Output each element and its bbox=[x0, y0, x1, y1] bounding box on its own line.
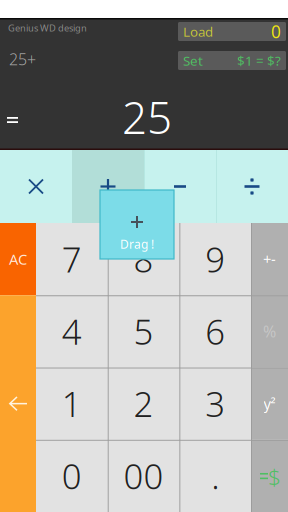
button[interactable]: 1 bbox=[36, 367, 108, 440]
button[interactable]: 2 bbox=[108, 367, 179, 440]
staticText: y² bbox=[263, 394, 275, 413]
staticText: 25 bbox=[122, 88, 172, 146]
staticText: 9 bbox=[205, 236, 225, 282]
staticText: $1 = $? bbox=[237, 52, 281, 69]
button[interactable]: 8 bbox=[108, 223, 179, 295]
button[interactable]: Load bbox=[178, 22, 286, 41]
staticText: 8 bbox=[133, 236, 153, 282]
button[interactable]: 9 bbox=[179, 223, 251, 295]
staticText: 6 bbox=[205, 308, 225, 354]
button[interactable]: Set bbox=[178, 51, 286, 70]
button[interactable]: % bbox=[251, 295, 288, 367]
button[interactable]: y² bbox=[251, 367, 288, 440]
button[interactable]: . bbox=[179, 440, 251, 512]
staticText: 5 bbox=[133, 308, 153, 354]
staticText: Load bbox=[183, 23, 213, 40]
staticText: % bbox=[263, 321, 276, 342]
staticText: 7 bbox=[62, 236, 82, 282]
staticText: Drag ! bbox=[120, 236, 154, 252]
staticText: 3 bbox=[205, 381, 225, 427]
staticText: 4 bbox=[62, 308, 82, 354]
staticText: 0 bbox=[62, 453, 82, 499]
staticText: 1 bbox=[62, 381, 82, 427]
staticText: +- bbox=[263, 249, 276, 269]
button[interactable]: AC bbox=[0, 223, 36, 295]
button[interactable] bbox=[0, 150, 72, 223]
staticText: 25+ bbox=[9, 48, 36, 70]
button[interactable]: 00 bbox=[108, 440, 179, 512]
button[interactable]: 5 bbox=[108, 295, 179, 367]
button[interactable]: 4 bbox=[36, 295, 108, 367]
staticText: 0 bbox=[271, 20, 281, 43]
button[interactable] bbox=[72, 150, 144, 223]
button[interactable]: 3 bbox=[179, 367, 251, 440]
staticText: $ bbox=[268, 461, 281, 491]
staticText: Genius WD design bbox=[8, 22, 87, 34]
button[interactable]: $ bbox=[251, 440, 288, 512]
button[interactable]: Backspace bbox=[0, 295, 36, 512]
button[interactable]: 7 bbox=[36, 223, 108, 295]
staticText: Set bbox=[183, 52, 203, 69]
staticText: 2 bbox=[133, 381, 153, 427]
button[interactable]: Drag ! bbox=[100, 190, 174, 259]
button[interactable]: +- bbox=[251, 223, 288, 295]
staticText: . bbox=[211, 453, 219, 499]
button[interactable] bbox=[144, 150, 216, 223]
button[interactable]: 6 bbox=[179, 295, 251, 367]
button[interactable] bbox=[216, 150, 288, 223]
staticText: 00 bbox=[123, 453, 163, 499]
staticText: AC bbox=[9, 249, 27, 269]
button[interactable]: 0 bbox=[36, 440, 108, 512]
